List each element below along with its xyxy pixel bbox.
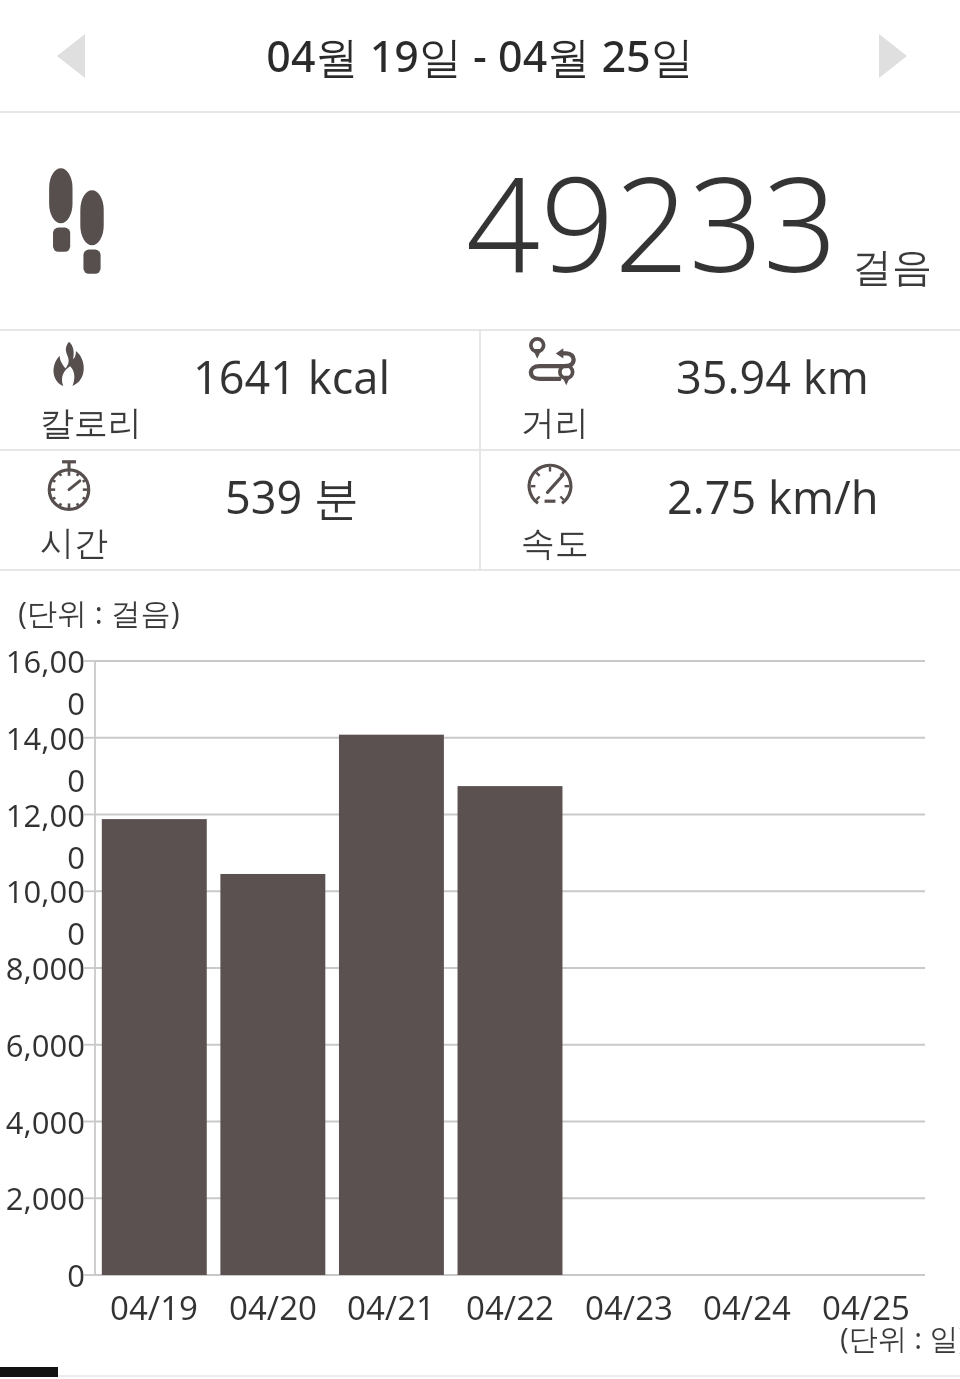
staticText: 04/22: [450, 1285, 570, 1330]
button[interactable]: 이전 주: [26, 11, 116, 101]
staticText: 35.94 km: [676, 346, 869, 407]
staticText: 거리: [521, 402, 589, 445]
staticText: 0: [0, 1254, 85, 1296]
button[interactable]: 시간: [0, 451, 479, 569]
button[interactable]: 다음 주: [848, 11, 938, 101]
staticText: 2,000: [0, 1177, 85, 1219]
button[interactable]: 거리: [481, 331, 960, 449]
staticText: 14,000: [0, 717, 85, 801]
staticText: 시간: [40, 522, 108, 565]
staticText: 8,000: [0, 947, 85, 989]
staticText: (단위 : 일): [840, 1318, 960, 1358]
staticText: 04/20: [213, 1285, 333, 1330]
staticText: 1641 kcal: [193, 346, 391, 407]
staticText: 04/21: [331, 1285, 451, 1330]
staticText: 4,000: [0, 1101, 85, 1143]
staticText: 04/23: [569, 1285, 689, 1330]
staticText: 걸음: [852, 242, 932, 292]
staticText: 04/24: [687, 1285, 807, 1330]
staticText: 6,000: [0, 1024, 85, 1066]
staticText: 10,000: [0, 870, 85, 954]
staticText: 칼로리: [40, 402, 142, 445]
staticText: 49233: [466, 133, 838, 310]
button[interactable]: 속도: [481, 451, 960, 569]
button[interactable]: 칼로리: [0, 331, 479, 449]
staticText: 12,000: [0, 794, 85, 878]
other: 걸음 수: [46, 166, 124, 276]
staticText: 04월 19일 - 04월 25일: [266, 26, 694, 85]
staticText: 속도: [521, 522, 589, 565]
button[interactable]: 걸음 수: [0, 113, 960, 329]
staticText: 16,000: [0, 640, 85, 724]
staticText: 04/19: [94, 1285, 214, 1330]
staticText: 04/25: [806, 1285, 926, 1330]
staticText: 2.75 km/h: [667, 466, 879, 527]
staticText: 539 분: [225, 466, 359, 527]
staticText: (단위 : 걸음): [18, 592, 180, 633]
